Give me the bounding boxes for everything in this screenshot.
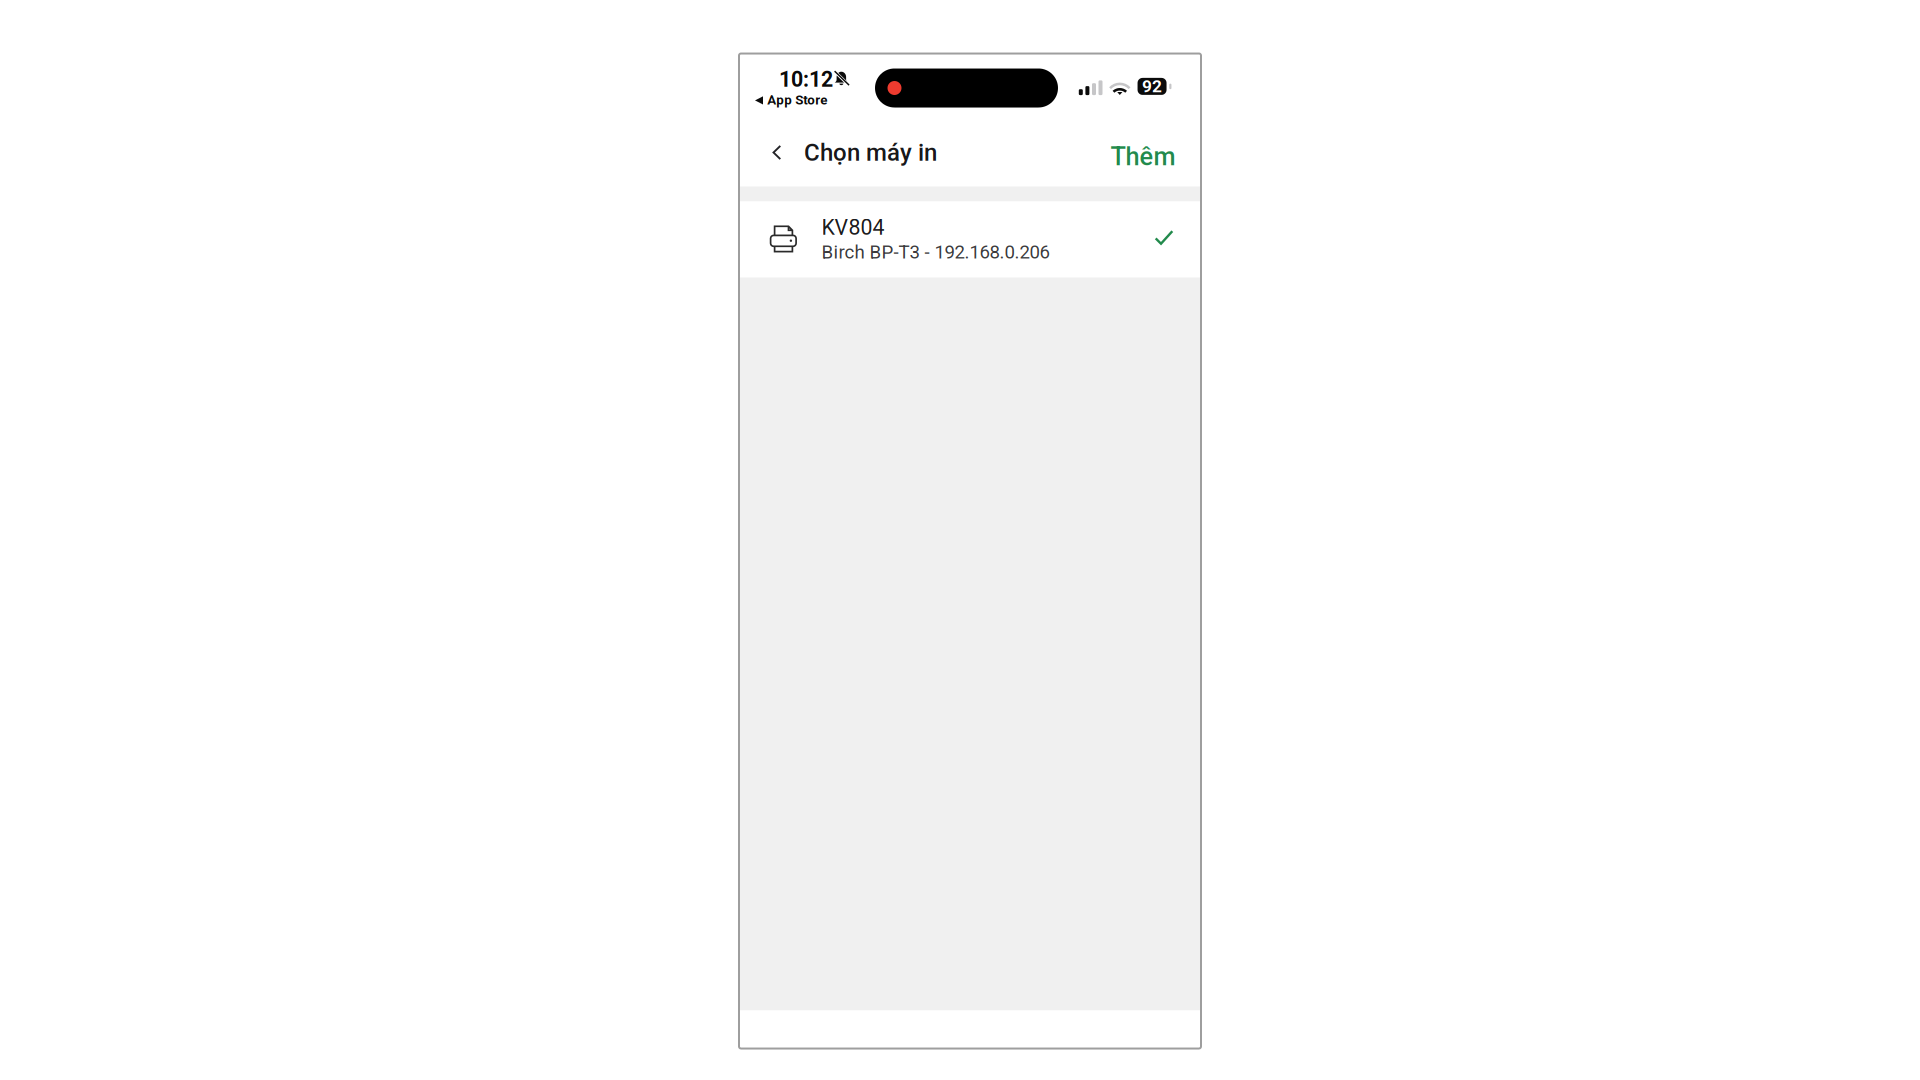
- staticText: Birch BP-T3 - 192.168.0.206: [821, 241, 1049, 263]
- staticText: 92: [1142, 76, 1162, 96]
- staticText: Thêm: [1110, 142, 1175, 171]
- staticText: KV804: [821, 215, 884, 240]
- button[interactable]: Back: [760, 125, 794, 179]
- staticText: Chọn máy in: [804, 138, 937, 166]
- staticText: App Store: [767, 92, 827, 108]
- staticText: 10:12: [779, 67, 833, 92]
- button[interactable]: KV804: [739, 201, 1201, 277]
- button[interactable]: Thêm: [1105, 129, 1181, 183]
